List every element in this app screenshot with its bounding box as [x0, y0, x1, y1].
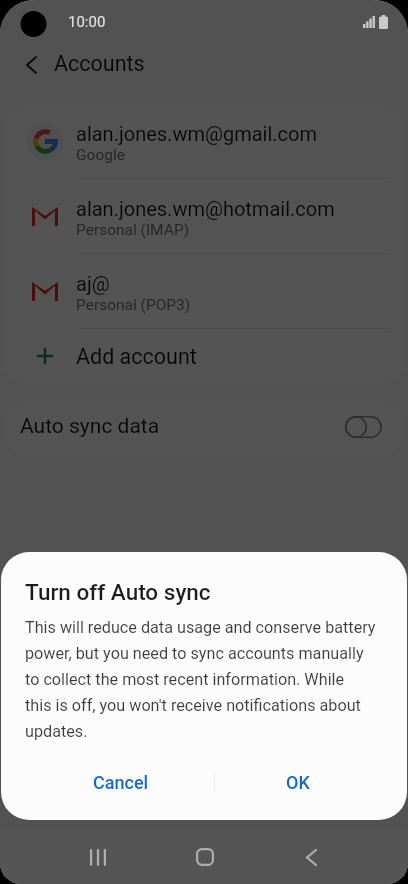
button[interactable]: Navigate up [12, 47, 50, 85]
staticText: 10:00 [68, 13, 106, 31]
staticText: aj@ [76, 272, 110, 295]
staticText: Cancel [93, 772, 149, 793]
staticText: This will reduce data usage and conserve… [25, 613, 385, 743]
button[interactable]: Home [169, 831, 241, 883]
staticText: Turn off Auto sync [25, 579, 211, 605]
button[interactable]: Add account [2, 329, 406, 383]
button[interactable]: Cancel [26, 758, 215, 808]
button[interactable]: alan.jones.wm@hotmail.com [2, 179, 406, 253]
staticText: OK [286, 772, 310, 793]
staticText: Personal (IMAP) [76, 221, 190, 239]
staticText: Add account [76, 344, 197, 369]
staticText: Personal (POP3) [76, 296, 191, 314]
button[interactable]: Auto sync data [2, 400, 406, 453]
staticText: Auto sync data [20, 414, 160, 439]
staticText: Google [76, 146, 125, 164]
staticText: alan.jones.wm@gmail.com [76, 122, 317, 145]
button[interactable]: Recent apps [62, 831, 134, 883]
button[interactable]: Back [275, 831, 347, 883]
button[interactable]: aj@ [2, 254, 406, 328]
staticText: alan.jones.wm@hotmail.com [76, 197, 335, 220]
button[interactable]: OK [214, 758, 382, 808]
button[interactable]: alan.jones.wm@gmail.com [2, 104, 406, 178]
staticText: Accounts [54, 51, 145, 76]
other: Auto sync data toggle [345, 416, 382, 438]
